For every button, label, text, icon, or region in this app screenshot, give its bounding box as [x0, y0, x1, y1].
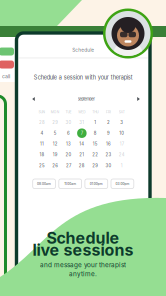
button[interactable]: 31 — [75, 117, 88, 128]
staticText: call — [2, 73, 10, 79]
staticText: THU — [92, 110, 98, 114]
staticText: 28 — [79, 163, 85, 168]
staticText: 27 — [66, 163, 71, 168]
staticText: 13 — [66, 141, 71, 147]
staticText: 30 — [65, 120, 71, 125]
staticText: 14 — [79, 141, 84, 147]
button[interactable]: 1 — [88, 117, 102, 128]
button[interactable]: 24 — [115, 149, 128, 160]
staticText: 29 — [52, 120, 58, 125]
staticText: SUN — [38, 110, 45, 114]
button[interactable]: 26 — [49, 160, 62, 171]
button[interactable]: Next month — [133, 94, 143, 104]
staticText: September — [77, 97, 94, 101]
staticText: and message your therapist — [40, 261, 126, 269]
staticText: 6 — [67, 131, 70, 136]
staticText: 12 — [53, 141, 58, 147]
button[interactable]: 8 — [88, 128, 102, 139]
staticText: 08:00am — [37, 182, 51, 186]
staticText: 8 — [94, 131, 97, 136]
button[interactable]: 11:00am — [59, 179, 82, 189]
staticText: MON — [51, 110, 60, 114]
staticText: Schedule — [72, 47, 94, 53]
staticText: 10 — [119, 131, 124, 136]
button[interactable]: 2 — [102, 117, 115, 128]
button[interactable]: 13 — [62, 139, 75, 149]
staticText: 16 — [106, 141, 111, 147]
staticText: Schedule — [46, 228, 119, 248]
staticText: 19 — [53, 152, 58, 157]
button[interactable]: 22 — [88, 149, 102, 160]
staticText: 20 — [65, 152, 71, 157]
button[interactable]: Previous month — [28, 94, 38, 104]
staticText: 22 — [92, 152, 98, 157]
staticText: 28 — [39, 120, 45, 125]
staticText: 5 — [54, 131, 57, 136]
staticText: 1 — [94, 120, 96, 125]
button[interactable]: 5 — [49, 128, 62, 139]
button[interactable]: 18 — [35, 149, 49, 160]
button[interactable]: 4 — [35, 128, 49, 139]
staticText: 4 — [40, 131, 43, 136]
button[interactable]: 12 — [49, 139, 62, 149]
button[interactable]: 25 — [35, 160, 49, 171]
staticText: 31 — [79, 120, 84, 125]
button[interactable]: 08:00am — [33, 179, 55, 189]
button[interactable]: 11 — [35, 139, 49, 149]
button[interactable]: 01:00pm — [85, 179, 108, 189]
staticText: 24 — [119, 152, 125, 157]
button[interactable]: 30 — [102, 160, 115, 171]
staticText: 2 — [107, 120, 110, 125]
button[interactable]: 28 — [35, 117, 49, 128]
staticText: 18 — [39, 152, 44, 157]
button[interactable]: 19 — [49, 149, 62, 160]
staticText: 03:00pm — [115, 182, 129, 186]
staticText: 29 — [92, 163, 98, 168]
staticText: 11:00am — [64, 182, 76, 186]
staticText: 1 — [121, 163, 123, 168]
button[interactable]: 16 — [102, 139, 115, 149]
button[interactable]: 15 — [88, 139, 102, 149]
staticText: 23 — [105, 152, 111, 157]
button[interactable]: 20 — [62, 149, 75, 160]
staticText: 11 — [40, 141, 44, 147]
staticText: 25 — [39, 163, 45, 168]
staticText: 17 — [120, 141, 124, 147]
button[interactable]: 27 — [62, 160, 75, 171]
button[interactable]: 1 — [115, 160, 128, 171]
staticText: 26 — [52, 163, 58, 168]
staticText: SAT — [119, 110, 125, 114]
staticText: TUE — [65, 110, 71, 114]
button[interactable]: 29 — [49, 117, 62, 128]
staticText: 01:00pm — [90, 182, 103, 186]
staticText: 15 — [93, 141, 98, 147]
staticText: FRI — [106, 110, 111, 114]
button[interactable]: 03:00pm — [111, 179, 134, 189]
staticText: live sessions — [32, 240, 133, 260]
button[interactable]: 7 — [75, 128, 88, 139]
staticText: Schedule a session with your therapist — [34, 74, 133, 81]
button[interactable]: 9 — [102, 128, 115, 139]
staticText: 21 — [79, 152, 84, 157]
button[interactable]: 23 — [102, 149, 115, 160]
button[interactable]: 14 — [75, 139, 88, 149]
button[interactable]: 30 — [62, 117, 75, 128]
staticText: 7 — [81, 131, 83, 136]
button[interactable]: 17 — [115, 139, 128, 149]
button[interactable]: 3 — [115, 117, 128, 128]
staticText: WED — [78, 110, 85, 114]
staticText: 9 — [107, 131, 110, 136]
button[interactable]: 21 — [75, 149, 88, 160]
staticText: 30 — [105, 163, 111, 168]
staticText: 3 — [120, 120, 123, 125]
button[interactable]: 29 — [88, 160, 102, 171]
button[interactable]: 10 — [115, 128, 128, 139]
staticText: anytime. — [69, 270, 97, 278]
button[interactable]: 28 — [75, 160, 88, 171]
button[interactable]: 6 — [62, 128, 75, 139]
